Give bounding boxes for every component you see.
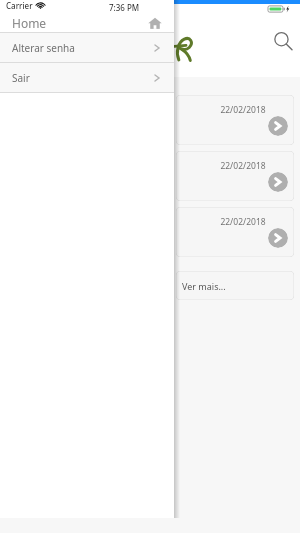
staticText: 22/02/2018 bbox=[220, 216, 266, 228]
button[interactable]: 22/02/2018 bbox=[176, 95, 294, 145]
staticText: 7:36 PM bbox=[109, 2, 140, 13]
button[interactable]: 22/02/2018 bbox=[176, 151, 294, 201]
button[interactable]: Search bbox=[272, 30, 294, 52]
button[interactable]: Sair bbox=[0, 63, 174, 92]
button[interactable]: Open detail bbox=[268, 228, 288, 248]
button[interactable]: Home bbox=[148, 16, 162, 30]
staticText: Home bbox=[12, 15, 47, 31]
staticText: Carrier bbox=[6, 0, 33, 11]
staticText: Sair bbox=[12, 71, 30, 85]
button[interactable]: 22/02/2018 bbox=[176, 207, 294, 257]
button[interactable]: Open detail bbox=[268, 116, 288, 136]
button[interactable]: Alterar senha bbox=[0, 33, 174, 62]
staticText: 22/02/2018 bbox=[220, 104, 266, 116]
staticText: Alterar senha bbox=[12, 41, 75, 55]
staticText: Ver mais... bbox=[182, 280, 226, 292]
button[interactable]: Open detail bbox=[268, 172, 288, 192]
staticText: 22/02/2018 bbox=[220, 160, 266, 172]
button[interactable]: Ver mais... bbox=[176, 271, 294, 300]
